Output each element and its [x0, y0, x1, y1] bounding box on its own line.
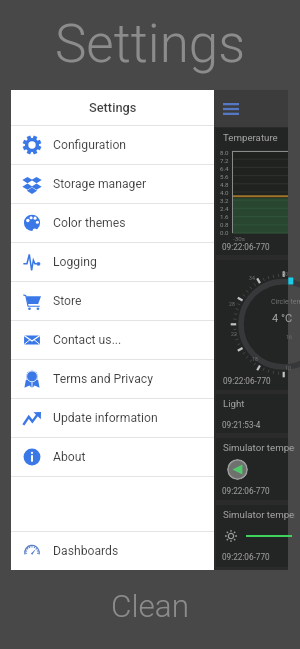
button[interactable]: Simulator temperature — [216, 505, 288, 567]
button[interactable]: Terms and Privacy — [11, 360, 214, 398]
staticText: 0.8 — [220, 221, 229, 228]
button[interactable]: Play — [227, 459, 248, 480]
button[interactable]: Update information — [11, 399, 214, 437]
button[interactable]: Color themes — [11, 204, 214, 242]
button[interactable]: Configuration — [11, 126, 214, 164]
staticText: 1.6 — [220, 213, 229, 220]
staticText: 8.0 — [220, 149, 229, 156]
staticText: 22 — [231, 331, 237, 337]
staticText: 3.2 — [220, 197, 229, 204]
staticText: Simulator temperature — [223, 509, 295, 520]
staticText: 7.2 — [220, 157, 229, 164]
button[interactable]: Logging — [11, 243, 214, 281]
staticText: About — [53, 450, 86, 464]
staticText: 30 — [282, 271, 288, 277]
staticText: 2.4 — [220, 205, 229, 212]
staticText: 09:21:53-4 — [222, 420, 261, 430]
staticText: -30s — [233, 235, 245, 242]
button[interactable]: Simulator temperature — [216, 438, 288, 500]
staticText: 09:22:06-770 — [222, 242, 270, 252]
staticText: Settings — [0, 13, 300, 75]
staticText: 09:22:06-770 — [223, 376, 271, 386]
staticText: Update information — [53, 411, 158, 425]
staticText: Configuration — [53, 138, 127, 152]
staticText: 28 — [229, 301, 235, 307]
staticText: Logging — [53, 255, 97, 269]
staticText: 09:22:06-770 — [222, 552, 270, 562]
staticText: Circle temperature — [271, 298, 300, 306]
staticText: 16 — [286, 334, 292, 340]
staticText: Store — [53, 294, 82, 308]
button[interactable]: Light — [216, 394, 288, 433]
button[interactable]: Store — [11, 282, 214, 320]
staticText: Simulator temperature — [223, 442, 295, 453]
staticText: Color themes — [53, 216, 126, 230]
staticText: Contact us... — [53, 333, 122, 347]
staticText: Dashboards — [53, 544, 119, 558]
staticText: Terms and Privacy — [53, 372, 153, 386]
button[interactable]: 30 — [216, 260, 288, 390]
staticText: 4 °C — [272, 312, 293, 325]
button[interactable]: Open navigation drawer — [214, 92, 248, 126]
staticText: 09:22:06-770 — [222, 486, 270, 496]
button[interactable]: Dashboards — [11, 532, 214, 570]
staticText: 18 — [252, 356, 258, 362]
staticText: 6.4 — [220, 165, 229, 172]
button[interactable]: Temperature — [216, 128, 288, 255]
button[interactable]: About — [11, 438, 214, 476]
staticText: 10 — [285, 365, 291, 371]
button[interactable]: Contact us... — [11, 321, 214, 359]
staticText: 0.0 — [220, 229, 229, 236]
staticText: 4.8 — [220, 181, 229, 188]
staticText: Clean — [0, 588, 300, 625]
staticText: Settings — [89, 100, 137, 115]
staticText: 34 — [249, 275, 255, 281]
button[interactable]: Storage manager — [11, 165, 214, 203]
staticText: Storage manager — [53, 177, 147, 191]
staticText: Temperature — [223, 132, 278, 143]
staticText: 5.6 — [220, 173, 229, 180]
staticText: 4.0 — [220, 189, 229, 196]
staticText: Light — [223, 398, 245, 409]
